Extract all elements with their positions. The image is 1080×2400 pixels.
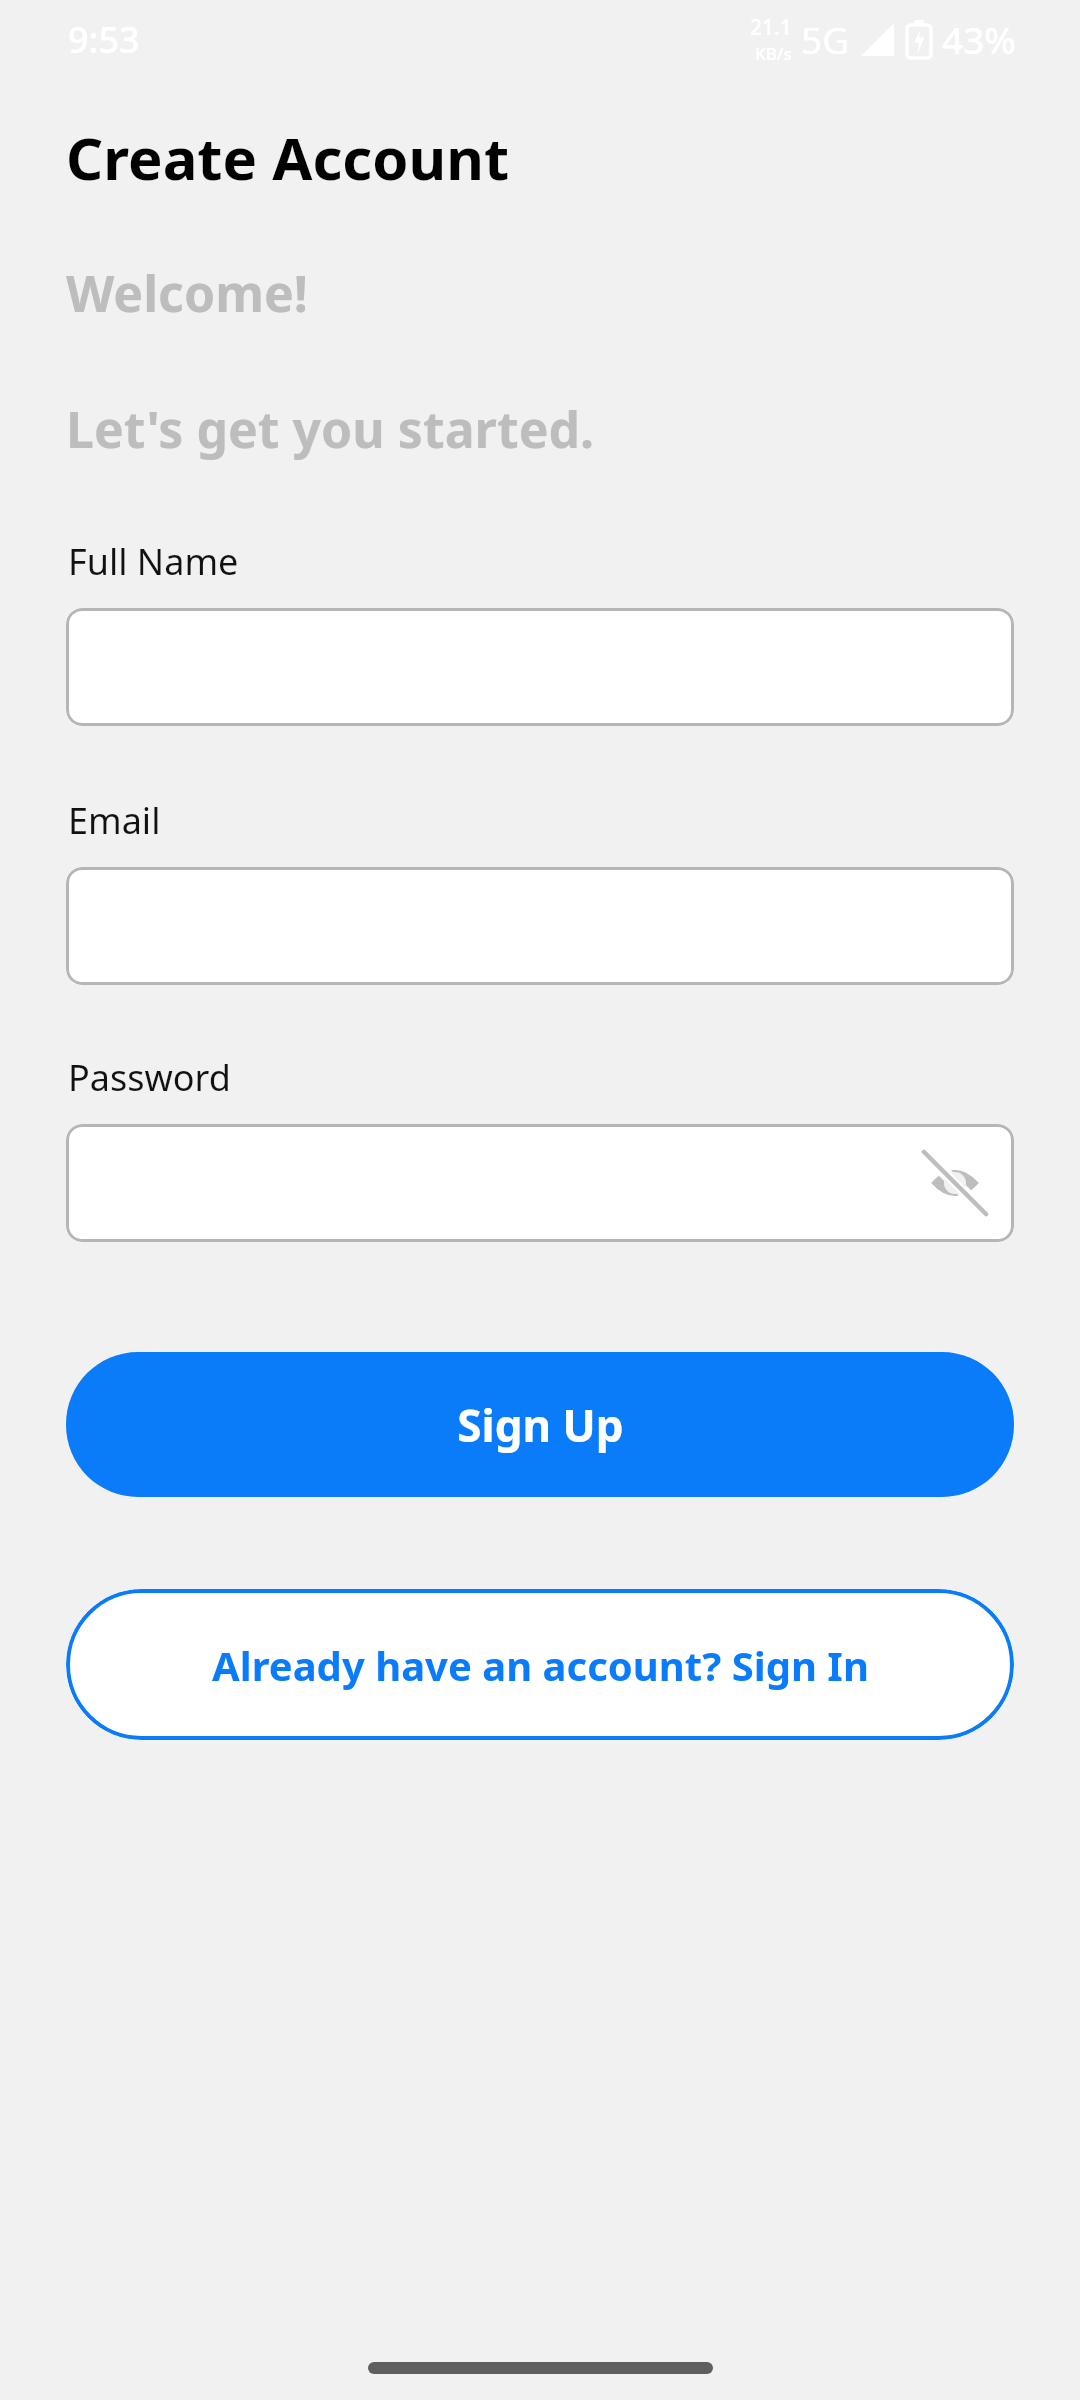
- staticText: 9:53: [68, 15, 140, 64]
- button[interactable]: [66, 867, 1014, 985]
- staticText: 21.1: [750, 13, 792, 42]
- staticText: Create Account: [66, 118, 510, 197]
- staticText: KB/s: [755, 42, 792, 65]
- button[interactable]: Toggle password visibility: [66, 1124, 1014, 1242]
- staticText: 43%: [942, 14, 1016, 64]
- staticText: Sign Up: [457, 1395, 624, 1455]
- staticText: Already have an account? Sign In: [212, 1638, 869, 1692]
- staticText: Email: [68, 796, 161, 845]
- button[interactable]: Already have an account? Sign In: [66, 1589, 1014, 1740]
- staticText: Let's get you started.: [66, 395, 595, 463]
- staticText: Password: [68, 1053, 231, 1102]
- staticText: 5G: [801, 14, 850, 64]
- staticText: Full Name: [68, 537, 239, 586]
- staticText: Welcome!: [66, 259, 308, 327]
- button[interactable]: Toggle password visibility: [924, 1152, 986, 1214]
- button[interactable]: [66, 608, 1014, 726]
- button[interactable]: Sign Up: [66, 1352, 1014, 1497]
